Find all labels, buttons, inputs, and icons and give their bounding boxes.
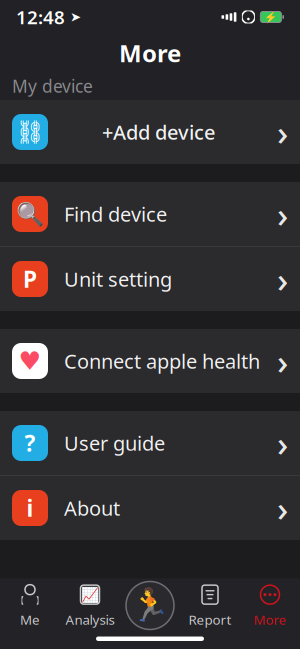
button[interactable]: Me [0, 578, 60, 632]
staticText: My device [12, 74, 93, 97]
staticText: ♥ [18, 347, 41, 375]
staticText: › [277, 256, 288, 302]
button[interactable]: ? [0, 411, 300, 475]
staticText: › [277, 109, 288, 155]
staticText: ⛓ [15, 119, 44, 145]
staticText: ? [24, 428, 35, 458]
staticText: More [253, 611, 286, 628]
staticText: 🏃 [130, 587, 170, 624]
button[interactable]: ⛓ [0, 100, 300, 164]
staticText: i [26, 493, 33, 523]
staticText: › [277, 191, 288, 237]
staticText: › [277, 420, 288, 466]
staticText: › [277, 485, 288, 531]
staticText: 🔍 [16, 201, 44, 227]
staticText: › [277, 338, 288, 384]
button[interactable]: 🔍 [0, 182, 300, 246]
staticText: 📈 [81, 586, 99, 603]
staticText: About [64, 495, 120, 521]
staticText: ⚡ [264, 11, 277, 23]
staticText: Connect apple health [64, 348, 260, 374]
button[interactable]: ♥ [0, 329, 300, 393]
staticText: Analysis [65, 611, 114, 628]
staticText: Find device [64, 201, 167, 227]
staticText: Me [20, 611, 40, 628]
staticText: More [119, 37, 181, 69]
staticText: P [23, 264, 37, 294]
button[interactable]: Start workout [120, 578, 180, 632]
button[interactable]: i [0, 476, 300, 540]
staticText: Unit setting [64, 266, 172, 292]
button[interactable]: More [240, 578, 300, 632]
staticText: Report [188, 611, 231, 628]
staticText: 12:48 [16, 5, 65, 29]
button[interactable]: 📈 [60, 578, 120, 632]
staticText: ➤ [65, 9, 81, 24]
button[interactable]: P [0, 247, 300, 311]
staticText: +Add device [102, 119, 215, 145]
staticText: User guide [64, 430, 165, 456]
button[interactable]: Report [180, 578, 240, 632]
